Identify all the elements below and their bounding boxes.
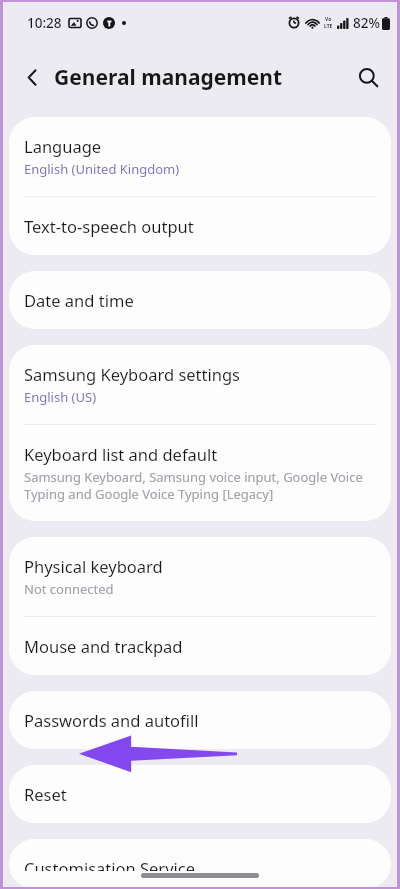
staticText: Keyboard list and default [24, 443, 218, 465]
staticText: Mouse and trackpad [24, 635, 183, 657]
staticText: Reset [24, 783, 67, 805]
staticText: Text-to-speech output [24, 215, 194, 237]
staticText: Passwords and autofill [24, 709, 199, 731]
staticText: English (US) [24, 388, 97, 406]
staticText: Physical keyboard [24, 555, 163, 577]
staticText: Language [24, 135, 102, 157]
button[interactable]: Back [10, 55, 54, 99]
staticText: Customisation Service [24, 857, 196, 871]
staticText: Vo [325, 16, 332, 23]
button[interactable]: Text-to-speech output [9, 197, 391, 255]
button[interactable]: Samsung Keyboard settings [9, 345, 391, 424]
staticText: Date and time [24, 289, 134, 311]
button[interactable]: Language [9, 117, 391, 196]
button[interactable]: Physical keyboard [9, 537, 391, 616]
button[interactable]: Mouse and trackpad [9, 617, 391, 675]
staticText: General management [54, 63, 283, 92]
button[interactable]: Passwords and autofill [9, 691, 391, 749]
button[interactable]: Reset [9, 765, 391, 823]
staticText: 82% [353, 14, 380, 32]
button[interactable]: Search [346, 55, 390, 99]
staticText: 10:28 [27, 14, 62, 32]
button[interactable]: Keyboard list and default [9, 425, 391, 521]
staticText: Not connected [24, 580, 114, 598]
staticText: Samsung Keyboard, Samsung voice input, G… [24, 468, 371, 503]
button[interactable]: Date and time [9, 271, 391, 329]
staticText: English (United Kingdom) [24, 160, 180, 178]
staticText: Samsung Keyboard settings [24, 363, 241, 385]
button[interactable]: Customisation Service [9, 839, 391, 889]
staticText: LTE [324, 23, 333, 30]
